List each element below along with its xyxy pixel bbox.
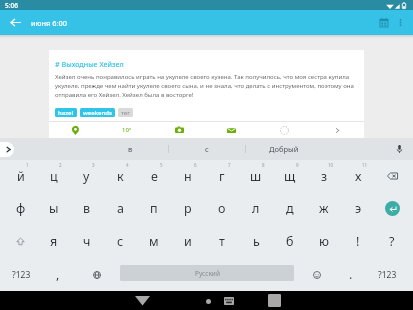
button[interactable]: н	[171, 160, 205, 192]
staticText: п	[150, 200, 158, 217]
button[interactable]: ,	[38, 258, 78, 291]
staticText: с	[117, 233, 124, 250]
button[interactable]: х	[341, 160, 375, 192]
staticText: з	[321, 168, 328, 185]
button[interactable]: Hide keyboard	[129, 291, 155, 310]
staticText: 8	[262, 162, 265, 168]
button[interactable]: Shift	[4, 225, 37, 258]
button[interactable]: к	[103, 160, 137, 192]
button[interactable]: .	[333, 258, 369, 291]
staticText: ф	[16, 200, 26, 217]
staticText: с	[205, 144, 209, 154]
button[interactable]: а	[103, 192, 137, 225]
staticText: ю	[319, 233, 329, 250]
button[interactable]: с	[103, 225, 137, 258]
staticText: к	[117, 168, 124, 185]
button[interactable]: ц	[37, 160, 70, 192]
staticText: ?123	[378, 269, 397, 281]
button[interactable]: Добрый	[245, 138, 322, 160]
button[interactable]: Recents	[264, 291, 284, 310]
button[interactable]: ?	[375, 225, 409, 258]
button[interactable]: е	[137, 160, 171, 192]
button[interactable]: weekends	[80, 108, 115, 117]
staticText: Русский	[195, 269, 220, 278]
button[interactable]: в	[70, 192, 103, 225]
button[interactable]: Calendar	[374, 11, 393, 34]
button[interactable]: Back	[6, 13, 25, 32]
staticText: weekends	[83, 109, 112, 117]
button[interactable]: ж	[307, 192, 341, 225]
button[interactable]: ф	[4, 192, 37, 225]
staticText: .	[349, 266, 353, 283]
button[interactable]: р	[171, 192, 205, 225]
staticText: я	[50, 233, 58, 250]
staticText: 1	[26, 162, 29, 168]
button[interactable]: hazel	[55, 108, 77, 117]
button[interactable]: Emoji	[300, 258, 333, 291]
staticText: ч	[83, 233, 91, 250]
button[interactable]: и	[171, 225, 205, 258]
button[interactable]: Change language	[78, 258, 115, 291]
button[interactable]: ш	[239, 160, 273, 192]
button[interactable]: б	[273, 225, 307, 258]
button[interactable]: Next	[311, 122, 364, 138]
button[interactable]: г	[205, 160, 239, 192]
button[interactable]: Camera	[153, 122, 205, 138]
button[interactable]: л	[239, 192, 273, 225]
button[interactable]: ч	[70, 225, 103, 258]
button[interactable]: у	[70, 160, 103, 192]
button[interactable]: Weather	[101, 122, 153, 138]
staticText: 3	[92, 162, 95, 168]
staticText: в	[83, 200, 91, 217]
staticText: у	[83, 168, 90, 185]
button[interactable]: э	[341, 192, 375, 225]
staticText: и	[184, 233, 192, 250]
staticText: й	[17, 168, 25, 185]
staticText: 4	[126, 162, 129, 168]
button[interactable]: й	[4, 160, 37, 192]
button[interactable]: щ	[273, 160, 307, 192]
button[interactable]: Backspace	[375, 160, 409, 192]
staticText: 5:06	[5, 1, 18, 10]
staticText: х	[355, 168, 362, 185]
button[interactable]: д	[273, 192, 307, 225]
button[interactable]: ы	[37, 192, 70, 225]
button[interactable]: м	[137, 225, 171, 258]
button[interactable]: More	[258, 122, 311, 138]
staticText: 10°	[122, 126, 132, 134]
button[interactable]: тег	[118, 108, 133, 117]
button[interactable]: Enter	[375, 192, 409, 225]
button[interactable]: Mail	[205, 122, 258, 138]
button[interactable]: ь	[239, 225, 273, 258]
button[interactable]: я	[37, 225, 70, 258]
staticText: р	[184, 200, 192, 217]
button[interactable]: !	[341, 225, 375, 258]
staticText: э	[355, 200, 362, 217]
button[interactable]: ?123	[4, 258, 38, 291]
staticText: Хейзел очень понравилось играть на укуле…	[55, 73, 354, 99]
button[interactable]: т	[205, 225, 239, 258]
staticText: а	[117, 200, 124, 217]
staticText: л	[252, 200, 260, 217]
button[interactable]: о	[205, 192, 239, 225]
staticText: о	[218, 200, 226, 217]
button[interactable]: More options	[388, 11, 413, 34]
button[interactable]: ?123	[369, 258, 405, 291]
button[interactable]: ю	[307, 225, 341, 258]
staticText: 7	[228, 162, 231, 168]
button[interactable]: Keyboard	[220, 292, 238, 310]
staticText: !	[356, 233, 360, 250]
button[interactable]: Expand suggestions	[0, 142, 14, 157]
button[interactable]: с	[168, 138, 245, 160]
staticText: ?	[389, 233, 395, 250]
button[interactable]: в	[92, 138, 168, 160]
staticText: т	[219, 233, 225, 250]
button[interactable]: Home	[199, 292, 217, 310]
button[interactable]: Voice input	[392, 142, 406, 156]
button[interactable]: Location	[49, 122, 101, 138]
staticText: 5	[160, 162, 163, 168]
button[interactable]: з	[307, 160, 341, 192]
staticText: ы	[49, 200, 59, 217]
button[interactable]: п	[137, 192, 171, 225]
button[interactable]: Русский	[120, 265, 294, 281]
